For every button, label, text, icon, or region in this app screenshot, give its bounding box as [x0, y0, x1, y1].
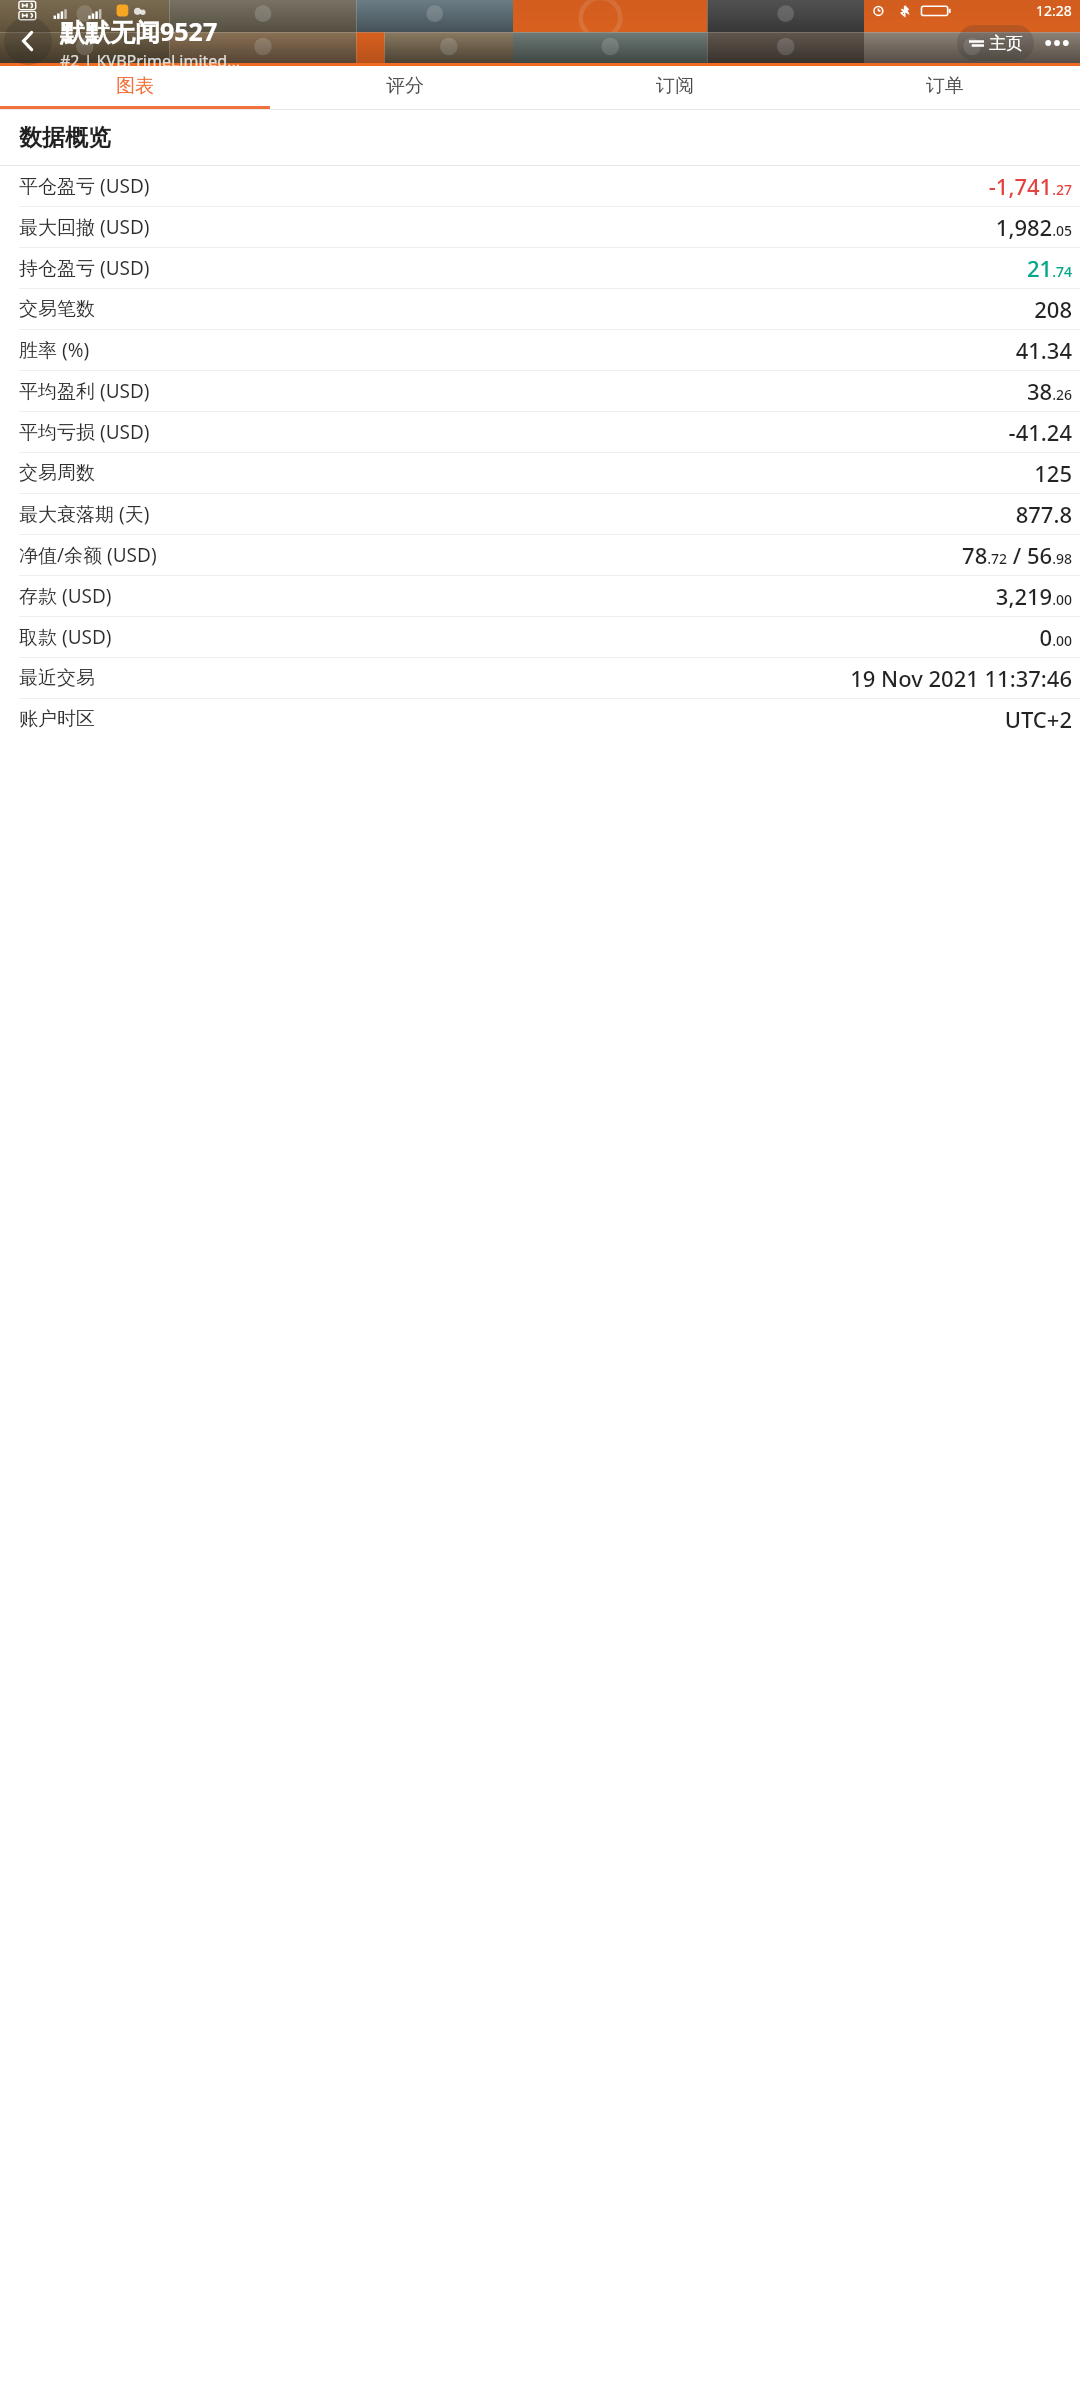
staticText: 19 Nov 2021 11:37:46	[850, 663, 1072, 693]
staticText: 交易周数	[19, 461, 95, 485]
staticText: 订单	[926, 74, 964, 98]
staticText: 平均盈利 (USD)	[19, 378, 150, 404]
staticText: 净值/余额 (USD)	[19, 542, 157, 568]
staticText: UTC+2	[1004, 704, 1072, 734]
button[interactable]: 最大衰落期 (天)	[0, 494, 1080, 534]
button[interactable]: 胜率 (%)	[0, 330, 1080, 370]
staticText: 订阅	[656, 74, 694, 98]
staticText: 平均亏损 (USD)	[19, 419, 150, 445]
staticText: 评分	[386, 74, 424, 98]
staticText: -1,741.27	[988, 171, 1072, 201]
button[interactable]: 平均亏损 (USD)	[0, 412, 1080, 452]
button[interactable]: 平均盈利 (USD)	[0, 371, 1080, 411]
staticText: 最近交易	[19, 666, 95, 690]
staticText: 账户时区	[19, 707, 95, 731]
staticText: 数据概览	[19, 123, 111, 152]
button[interactable]: 交易周数	[0, 453, 1080, 493]
button[interactable]: 净值/余额 (USD)	[0, 535, 1080, 575]
button[interactable]: 交易笔数	[0, 289, 1080, 329]
staticText: 208	[1034, 294, 1072, 324]
staticText: 取款 (USD)	[19, 624, 112, 650]
staticText: 胜率 (%)	[19, 337, 90, 363]
staticText: 3,219.00	[995, 581, 1072, 611]
staticText: 平仓盈亏 (USD)	[19, 173, 150, 199]
staticText: 主页	[989, 33, 1023, 54]
staticText: 1,982.05	[995, 212, 1072, 242]
staticText: 默默无闻9527	[60, 14, 218, 48]
button[interactable]: 图表	[0, 66, 270, 106]
staticText: 78.72 / 56.98	[962, 540, 1072, 570]
staticText: 最大衰落期 (天)	[19, 501, 150, 527]
staticText: 12:28	[1036, 1, 1072, 20]
staticText: 图表	[116, 74, 154, 98]
staticText: 877.8	[1015, 499, 1072, 529]
button[interactable]: 订阅	[540, 66, 810, 106]
staticText: 41.34	[1015, 335, 1072, 365]
button[interactable]: 存款 (USD)	[0, 576, 1080, 616]
staticText: 存款 (USD)	[19, 583, 112, 609]
button[interactable]: 取款 (USD)	[0, 617, 1080, 657]
staticText: 最大回撤 (USD)	[19, 214, 150, 240]
staticText: 交易笔数	[19, 297, 95, 321]
staticText: 125	[1034, 458, 1072, 488]
button[interactable]: Back	[4, 17, 52, 65]
button[interactable]: 评分	[270, 66, 540, 106]
staticText: 21.74	[1027, 253, 1072, 283]
button[interactable]: 持仓盈亏 (USD)	[0, 248, 1080, 288]
button[interactable]: 平仓盈亏 (USD)	[0, 166, 1080, 206]
button[interactable]: 最大回撤 (USD)	[0, 207, 1080, 247]
button[interactable]: More options	[1037, 23, 1077, 63]
staticText: -41.24	[1008, 417, 1072, 447]
staticText: 持仓盈亏 (USD)	[19, 255, 150, 281]
staticText: #2 | KVBPrimeLimited...	[60, 50, 241, 72]
button[interactable]: 订单	[810, 66, 1080, 106]
staticText: 38.26	[1027, 376, 1072, 406]
staticText: 0.00	[1039, 622, 1072, 652]
button[interactable]: 主页	[968, 25, 1023, 61]
button[interactable]: 最近交易	[0, 658, 1080, 698]
button[interactable]: 账户时区	[0, 699, 1080, 739]
